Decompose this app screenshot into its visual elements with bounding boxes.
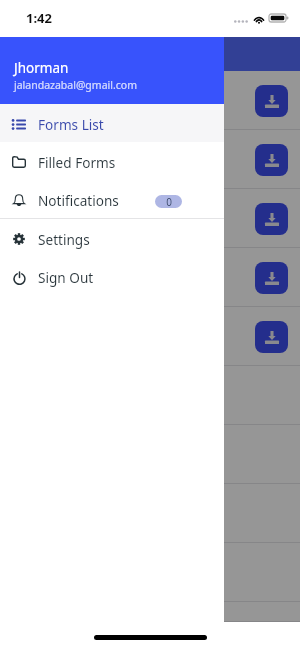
- button[interactable]: Forms List: [0, 104, 224, 142]
- button[interactable]: Download: [255, 262, 288, 294]
- staticText: Sign Out: [38, 268, 94, 287]
- button[interactable]: Download: [255, 85, 288, 117]
- button[interactable]: Download: [255, 144, 288, 176]
- button[interactable]: Download: [255, 203, 288, 235]
- staticText: Forms List: [38, 115, 104, 134]
- staticText: Jhorman: [14, 59, 69, 77]
- button[interactable]: Sign Out: [0, 257, 224, 295]
- staticText: 1:42: [26, 9, 52, 27]
- staticText: jalandazabal@gmail.com: [14, 78, 137, 92]
- staticText: Filled Forms: [38, 153, 116, 172]
- button[interactable]: Filled Forms: [0, 142, 224, 180]
- button[interactable]: Settings: [0, 219, 224, 257]
- button[interactable]: Download: [255, 321, 288, 353]
- staticText: Notifications: [38, 191, 119, 210]
- staticText: Settings: [38, 230, 90, 249]
- staticText: 0: [166, 195, 172, 208]
- button[interactable]: Notifications: [0, 180, 224, 218]
